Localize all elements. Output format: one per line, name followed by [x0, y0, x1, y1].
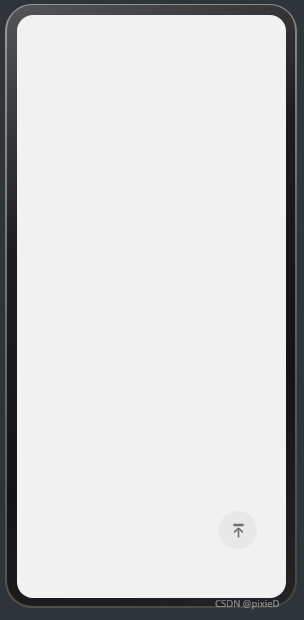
button[interactable]: Scroll to top	[219, 511, 257, 549]
staticText: CSDN @pixieD	[215, 597, 280, 610]
